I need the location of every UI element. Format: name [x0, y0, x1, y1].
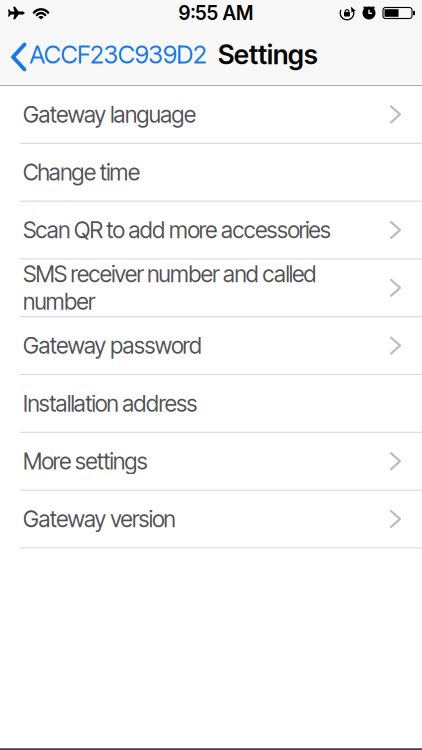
staticText: Scan QR to add more accessories [23, 216, 331, 244]
staticText: SMS receiver number and called [23, 260, 317, 288]
staticText: Gateway password [23, 332, 202, 359]
staticText: ACCF23C939D2 [29, 40, 207, 69]
staticText: Installation address [23, 390, 198, 417]
staticText: Gateway language [23, 101, 196, 128]
staticText: Change time [23, 158, 140, 186]
staticText: Gateway version [23, 505, 176, 533]
staticText: 9:55 AM [178, 1, 254, 25]
staticText: Settings [218, 38, 318, 71]
staticText: More settings [23, 447, 148, 475]
staticText: number [23, 288, 95, 315]
